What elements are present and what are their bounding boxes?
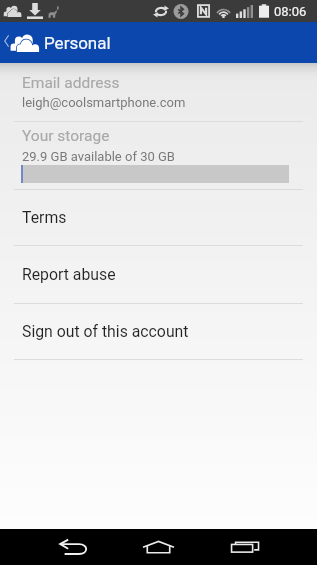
button[interactable]: Report abuse <box>0 246 317 303</box>
button[interactable]: Sign out of this account <box>0 304 317 359</box>
button[interactable]: Recent apps <box>198 529 292 565</box>
staticText: 29.9 GB available of 30 GB <box>22 149 175 164</box>
button[interactable]: Terms <box>0 190 317 245</box>
staticText: Personal <box>44 33 111 53</box>
button[interactable] <box>0 122 317 189</box>
staticText: Report abuse <box>22 265 116 284</box>
button[interactable]: Back <box>28 529 118 565</box>
staticText: Terms <box>22 208 67 227</box>
button[interactable]: Back <box>0 22 42 63</box>
staticText: Email address <box>22 74 120 92</box>
staticText: 08:06 <box>274 4 307 19</box>
button[interactable] <box>0 63 317 121</box>
staticText: leigh@coolsmartphone.com <box>22 95 186 110</box>
staticText: Your storage <box>22 127 110 145</box>
staticText: Sign out of this account <box>22 322 189 341</box>
button[interactable]: Home <box>118 529 198 565</box>
